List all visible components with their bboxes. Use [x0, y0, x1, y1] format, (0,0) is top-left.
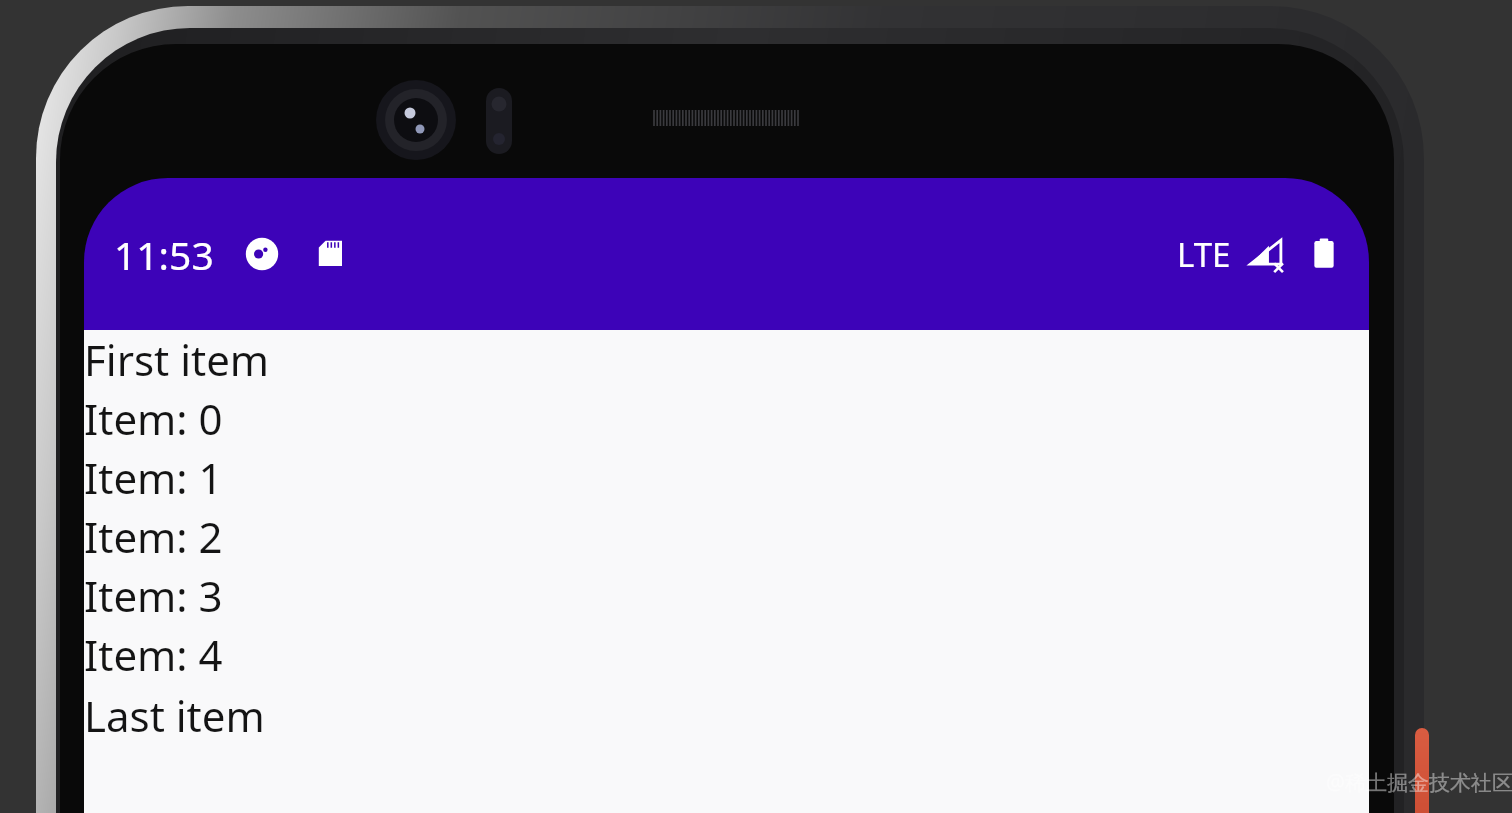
button[interactable]: Last item — [84, 686, 1369, 745]
staticText: Item: 3 — [84, 567, 223, 624]
button[interactable]: Item: 4 — [84, 625, 1369, 684]
button[interactable]: Item: 0 — [84, 389, 1369, 448]
button[interactable]: Item: 1 — [84, 448, 1369, 507]
staticText: First item — [84, 331, 270, 388]
other: No signal — [1245, 231, 1291, 277]
other: Battery — [1301, 231, 1347, 277]
button[interactable]: Item: 3 — [84, 566, 1369, 625]
staticText: Item: 2 — [84, 508, 223, 565]
staticText: @稀土掘金技术社区 — [1326, 768, 1512, 797]
staticText: Item: 0 — [84, 390, 223, 447]
button[interactable]: First item — [84, 330, 1369, 389]
staticText: Item: 1 — [84, 449, 223, 506]
other: Notification — [242, 234, 282, 274]
staticText: 11:53 — [114, 228, 214, 281]
staticText: Last item — [84, 687, 265, 744]
other: SD card — [310, 234, 350, 274]
button[interactable]: Item: 2 — [84, 507, 1369, 566]
staticText: LTE — [1177, 232, 1231, 277]
staticText: Item: 4 — [84, 626, 223, 683]
